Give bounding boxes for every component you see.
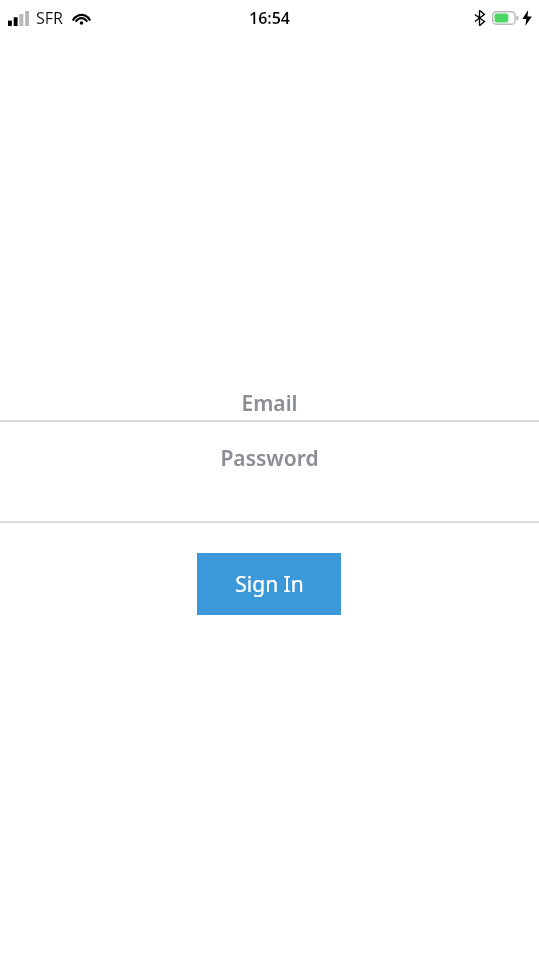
staticText: Email — [241, 389, 298, 418]
button[interactable]: Sign In — [197, 553, 341, 615]
staticText: 16:54 — [249, 7, 291, 29]
button[interactable]: Password — [0, 440, 539, 476]
staticText: SFR — [36, 7, 64, 29]
staticText: Password — [220, 444, 319, 473]
other: Bluetooth — [474, 10, 485, 26]
staticText: Sign In — [235, 570, 304, 599]
button[interactable]: Email — [0, 385, 539, 421]
